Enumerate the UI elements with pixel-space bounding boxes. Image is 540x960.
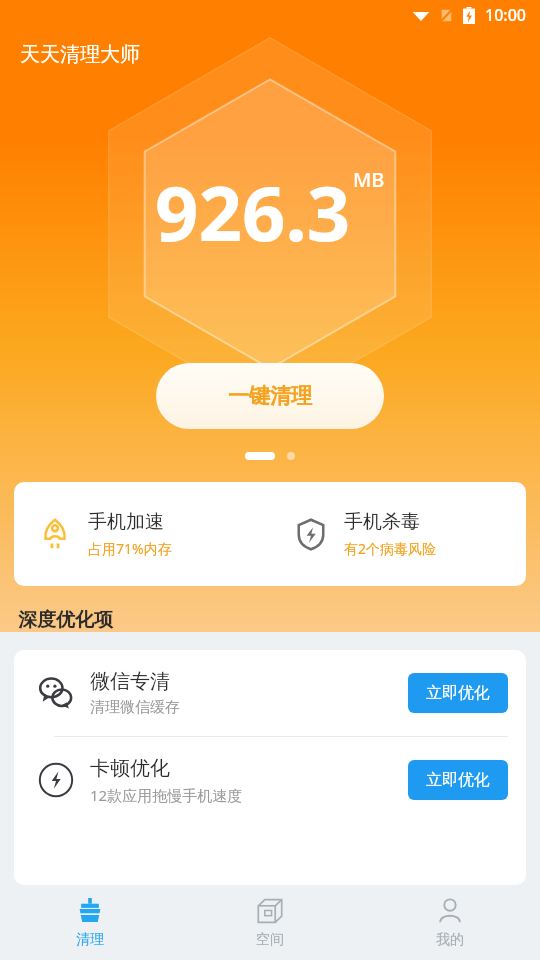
button[interactable]: Phone boost <box>14 482 270 586</box>
other: Lag optimisation <box>38 762 74 798</box>
staticText: MB <box>353 166 385 193</box>
staticText: 微信专清 <box>90 669 170 694</box>
staticText: 有2个病毒风险 <box>344 539 437 558</box>
other: WeChat clean <box>38 675 74 711</box>
staticText: 立即优化 <box>426 683 490 703</box>
staticText: 926.3 <box>155 160 351 264</box>
staticText: 手机加速 <box>88 510 164 534</box>
staticText: 深度优化项 <box>18 608 113 632</box>
staticText: 天天清理大师 <box>20 42 140 67</box>
other: Virus scan <box>294 517 328 551</box>
staticText: 清理微信缓存 <box>90 698 180 717</box>
staticText: 立即优化 <box>426 770 490 790</box>
button[interactable]: WeChat clean <box>14 650 526 736</box>
staticText: 手机杀毒 <box>344 510 420 534</box>
button[interactable]: Virus scan <box>270 482 526 586</box>
staticText: 清理 <box>76 931 104 949</box>
button[interactable]: 立即优化 <box>408 760 508 800</box>
staticText: 10:00 <box>485 4 526 26</box>
staticText: 空间 <box>256 931 284 949</box>
staticText: 占用71%内存 <box>88 539 172 558</box>
button[interactable]: Lag optimisation <box>14 737 526 823</box>
staticText: 12款应用拖慢手机速度 <box>90 785 243 805</box>
other: Clean <box>77 898 103 924</box>
button[interactable]: 一键清理 <box>156 363 384 429</box>
other: Phone boost <box>38 517 72 551</box>
staticText: 卡顿优化 <box>90 756 170 781</box>
other: Space <box>257 898 283 924</box>
button[interactable]: 立即优化 <box>408 673 508 713</box>
button[interactable]: Space <box>180 885 360 960</box>
button[interactable]: Clean <box>0 885 180 960</box>
staticText: 一键清理 <box>228 383 312 409</box>
other: Profile <box>437 898 463 924</box>
staticText: 我的 <box>436 931 464 949</box>
button[interactable]: Profile <box>360 885 540 960</box>
